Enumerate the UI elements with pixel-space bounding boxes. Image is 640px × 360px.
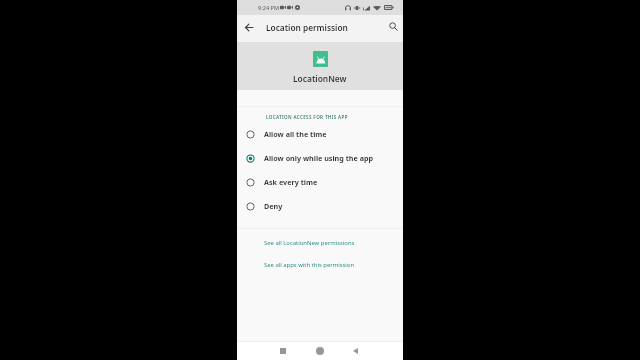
button[interactable]: See all apps with this permission	[237, 254, 403, 276]
staticText: LOCATION ACCESS FOR THIS APP	[266, 114, 348, 120]
staticText: LocationNew	[293, 73, 347, 84]
staticText: Deny	[264, 201, 283, 211]
staticText: Allow all the time	[264, 129, 327, 139]
staticText: See all LocationNew permissions	[264, 239, 355, 247]
button[interactable]: Home	[309, 341, 331, 360]
button[interactable]: See all LocationNew permissions	[237, 232, 403, 254]
button[interactable]: Back	[237, 15, 259, 42]
staticText: Location permission	[266, 22, 348, 33]
staticText: Ask every time	[264, 177, 318, 187]
staticText: See all apps with this permission	[264, 261, 355, 269]
staticText: Allow only while using the app	[264, 153, 374, 163]
staticText: 9:24 PM	[258, 4, 280, 12]
button[interactable]: Ask every time	[237, 170, 403, 194]
button[interactable]: Allow only while using the app	[237, 146, 403, 170]
button[interactable]: Back	[344, 341, 366, 360]
button[interactable]: Deny	[237, 194, 403, 218]
button[interactable]: Recents	[272, 341, 294, 360]
button[interactable]: Allow all the time	[237, 122, 403, 146]
button[interactable]: Search	[380, 15, 402, 42]
